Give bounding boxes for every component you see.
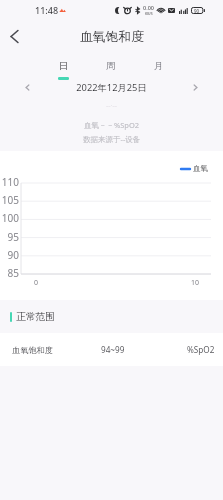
staticText: 10	[188, 278, 202, 288]
staticText: 11:48	[35, 4, 59, 16]
button[interactable]: Back	[0, 20, 29, 53]
staticText: 月	[154, 60, 164, 72]
staticText: --·--	[106, 101, 117, 111]
staticText: 血氧－－%SpO2	[84, 120, 140, 130]
staticText: 周	[106, 60, 116, 72]
button[interactable]: Next day	[168, 78, 223, 97]
staticText: 85	[0, 266, 19, 280]
staticText: KB/S	[145, 11, 153, 16]
staticText: 日	[59, 60, 69, 72]
staticText: 105	[0, 193, 19, 207]
staticText: 2022年12月25日	[55, 81, 168, 94]
staticText: 95	[0, 230, 19, 244]
staticText: 血氧饱和度	[12, 345, 101, 355]
staticText: 90	[0, 248, 19, 262]
staticText: 正常范围	[16, 311, 55, 323]
staticText: 0	[30, 278, 42, 288]
staticText: %SpO2	[187, 344, 215, 355]
button[interactable]: 周	[87, 53, 135, 81]
button[interactable]: 血氧饱和度	[0, 333, 223, 366]
staticText: 0.00	[143, 4, 154, 11]
button[interactable]: 日	[40, 53, 87, 81]
staticText: 数据来源于--设备	[83, 134, 141, 144]
staticText: 90	[194, 8, 200, 14]
staticText: 110	[0, 175, 19, 189]
button[interactable]: 月	[135, 53, 183, 81]
staticText: 血氧饱和度	[80, 29, 144, 45]
button[interactable]: Previous day	[0, 78, 55, 97]
staticText: 血氧	[193, 164, 208, 173]
staticText: 94~99	[101, 344, 187, 355]
staticText: 100	[0, 211, 19, 225]
